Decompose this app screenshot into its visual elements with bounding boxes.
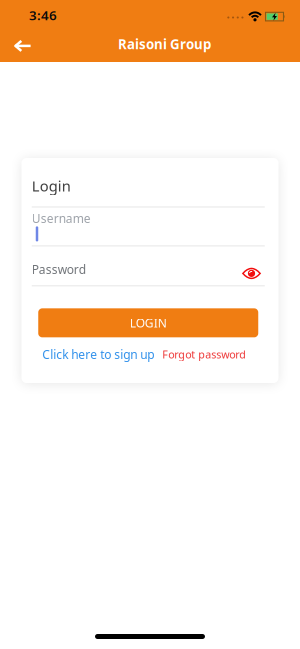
staticText: Password — [32, 261, 86, 277]
staticText: Forgot password — [162, 347, 246, 361]
staticText: Login — [32, 176, 71, 195]
staticText: LOGIN — [130, 315, 167, 331]
button[interactable] — [242, 263, 261, 276]
button[interactable] — [0, 40, 31, 51]
staticText: Username — [32, 210, 91, 226]
button[interactable]: Username — [32, 207, 265, 246]
button[interactable]: LOGIN — [38, 308, 258, 337]
button[interactable]: Forgot password — [162, 347, 246, 361]
staticText: 3:46 — [29, 6, 57, 24]
button[interactable]: Click here to sign up — [42, 346, 154, 362]
staticText: Click here to sign up — [42, 346, 154, 362]
button[interactable]: Password — [32, 246, 265, 286]
staticText: Raisoni Group — [118, 35, 211, 53]
